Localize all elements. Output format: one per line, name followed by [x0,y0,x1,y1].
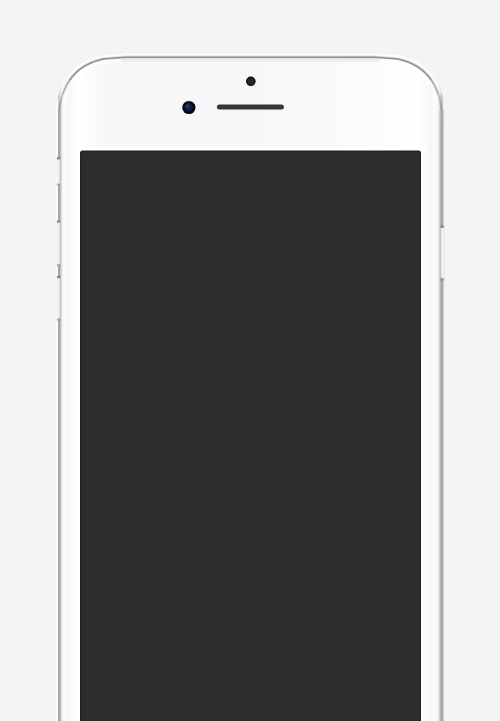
button[interactable]: Power [438,224,447,282]
button[interactable]: Volume up [54,219,63,267]
button[interactable]: Silent switch [54,155,63,188]
button[interactable]: Phone screen [80,150,421,721]
button[interactable]: Volume down [54,275,63,322]
